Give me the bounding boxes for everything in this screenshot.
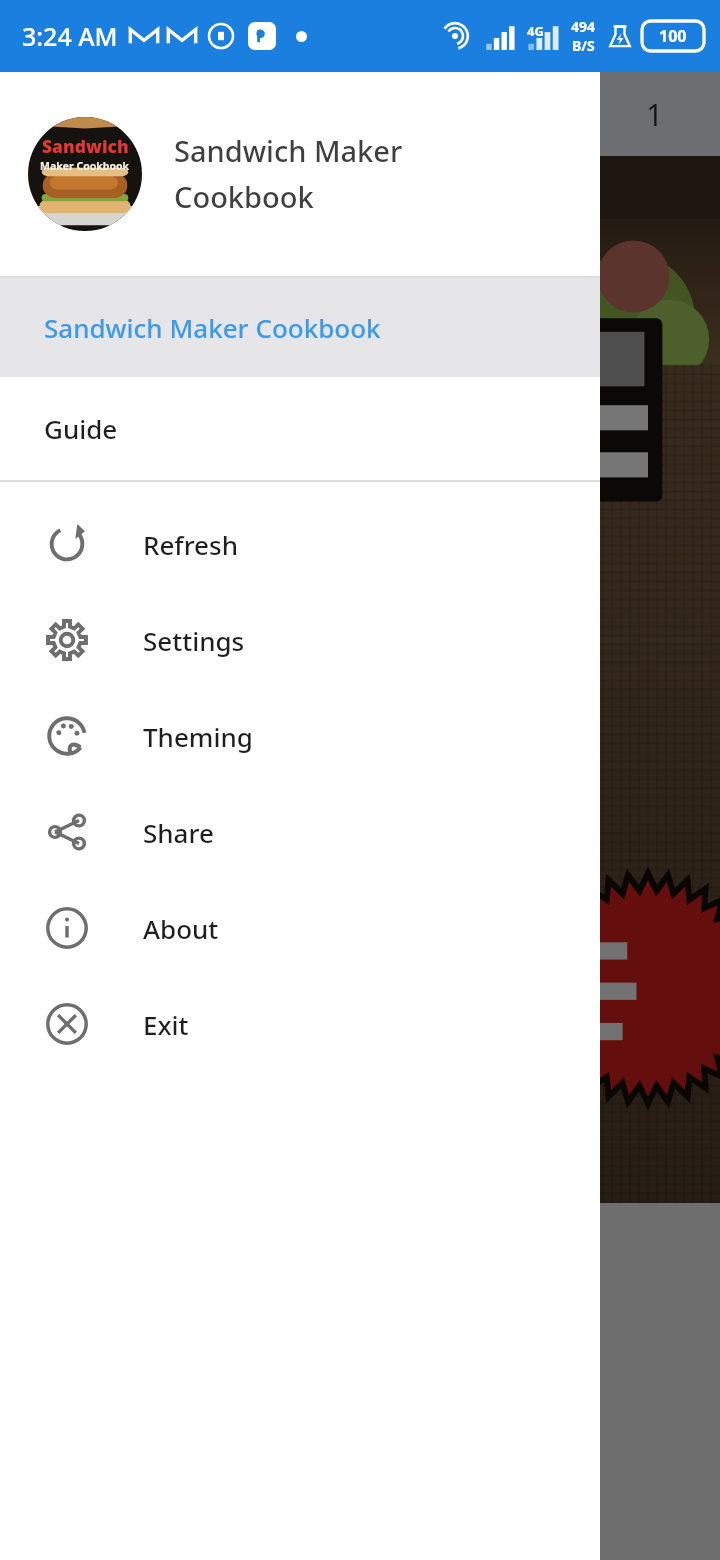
button[interactable]: Sandwich [0, 72, 600, 276]
button[interactable]: Theming [0, 688, 600, 784]
staticText: About [143, 911, 219, 946]
staticText: 4G [527, 22, 544, 40]
staticText: 100 [659, 25, 687, 47]
staticText: 1 [646, 94, 664, 135]
staticText: Theming [143, 719, 253, 754]
staticText: Refresh [143, 527, 238, 562]
staticText: Share [143, 815, 214, 850]
button[interactable]: Sandwich Maker Cookbook [0, 278, 600, 377]
other: Theming [43, 712, 91, 760]
staticText: Maker Cookbook [40, 159, 130, 173]
button[interactable]: Share [0, 784, 600, 880]
staticText: Sandwich Maker Cookbook [174, 131, 403, 217]
other: About [43, 904, 91, 952]
button[interactable]: About [0, 880, 600, 976]
other: Share [43, 808, 91, 856]
staticText: B/S [572, 36, 595, 55]
staticText: Sandwich [42, 134, 129, 158]
staticText: Settings [143, 623, 245, 658]
staticText: Guide [44, 411, 118, 446]
other: Refresh [43, 520, 91, 568]
button[interactable]: Settings [0, 592, 600, 688]
other: Exit [43, 1000, 91, 1048]
staticText: Exit [143, 1007, 189, 1042]
staticText: 494 [571, 17, 596, 36]
button[interactable]: Exit [0, 976, 600, 1072]
staticText: Sandwich Maker Cookbook [44, 310, 381, 345]
staticText: 3:24 AM [22, 19, 118, 53]
button[interactable]: Guide [0, 377, 600, 480]
button[interactable]: Refresh [0, 496, 600, 592]
other: Settings [43, 616, 91, 664]
